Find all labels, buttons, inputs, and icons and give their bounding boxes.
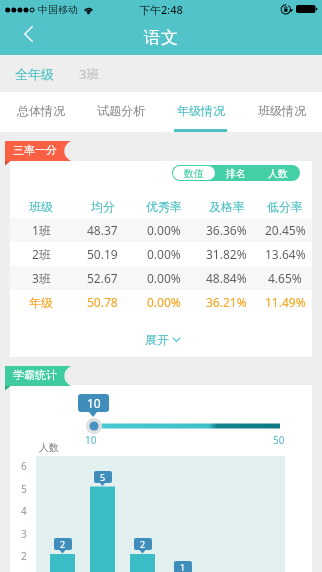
staticText: 年级 — [29, 295, 53, 310]
staticText: 1班 — [32, 222, 51, 238]
staticText: 50.19 — [87, 246, 118, 262]
staticText: 3班 — [32, 270, 51, 286]
staticText: 10 — [85, 433, 97, 447]
staticText: 0.00% — [147, 294, 181, 310]
staticText: 48.84% — [206, 270, 247, 286]
staticText: 50 — [273, 433, 285, 447]
button[interactable]: 3班 — [77, 60, 102, 88]
staticText: 低分率 — [267, 199, 303, 214]
button[interactable]: 年级情况 — [160, 92, 241, 132]
button[interactable]: Back — [0, 20, 48, 55]
staticText: 数值 — [184, 167, 204, 180]
staticText: 20.45% — [265, 222, 306, 238]
staticText: 2 — [21, 549, 27, 563]
staticText: 排名 — [226, 167, 246, 180]
button[interactable]: 人数 — [257, 166, 299, 180]
staticText: 36.36% — [206, 222, 247, 238]
button[interactable]: 总体情况 — [0, 92, 80, 132]
staticText: 2班 — [32, 246, 51, 262]
staticText: 1 — [180, 561, 186, 572]
staticText: 11.49% — [265, 294, 306, 310]
staticText: 4 — [21, 504, 27, 518]
staticText: 全年级 — [15, 66, 54, 82]
staticText: 52.67 — [87, 270, 118, 286]
staticText: 学霸统计 — [13, 368, 57, 382]
button[interactable]: 全年级 — [13, 61, 56, 87]
button[interactable]: 展开 — [10, 314, 312, 357]
staticText: 总体情况 — [17, 103, 65, 118]
staticText: 年级情况 — [177, 103, 225, 118]
staticText: 36.21% — [206, 294, 247, 310]
staticText: 班级 — [29, 199, 53, 214]
staticText: 2 — [140, 538, 146, 550]
staticText: 均分 — [91, 199, 115, 214]
staticText: 2 — [60, 538, 66, 550]
button[interactable]: 数值 — [173, 166, 215, 180]
staticText: 人数 — [268, 167, 288, 180]
staticText: 试题分析 — [97, 103, 145, 118]
staticText: 0.00% — [147, 246, 181, 262]
staticText: 0.00% — [147, 222, 181, 238]
staticText: 0.00% — [147, 270, 181, 286]
staticText: 优秀率 — [146, 199, 182, 214]
staticText: 6 — [21, 459, 27, 473]
staticText: 班级情况 — [258, 103, 306, 118]
button[interactable]: 班级情况 — [241, 92, 322, 132]
staticText: 48.37 — [87, 222, 118, 238]
staticText: 人数 — [39, 441, 59, 454]
button[interactable]: 排名 — [215, 166, 257, 180]
staticText: 10 — [87, 395, 101, 411]
staticText: 下午2:48 — [139, 2, 183, 17]
staticText: 4.65% — [268, 270, 302, 286]
staticText: 中国移动 — [38, 3, 78, 16]
staticText: 13.64% — [265, 246, 306, 262]
staticText: 3 — [21, 527, 27, 541]
staticText: 三率一分 — [13, 143, 57, 157]
staticText: 语文 — [144, 27, 178, 48]
staticText: 3班 — [79, 65, 100, 83]
button[interactable]: 试题分析 — [80, 92, 160, 132]
staticText: 31.82% — [206, 246, 247, 262]
staticText: 5 — [100, 471, 106, 483]
staticText: 5 — [21, 482, 27, 496]
staticText: 50.78 — [87, 294, 118, 310]
staticText: 及格率 — [209, 199, 245, 214]
staticText: 展开 — [145, 332, 169, 347]
